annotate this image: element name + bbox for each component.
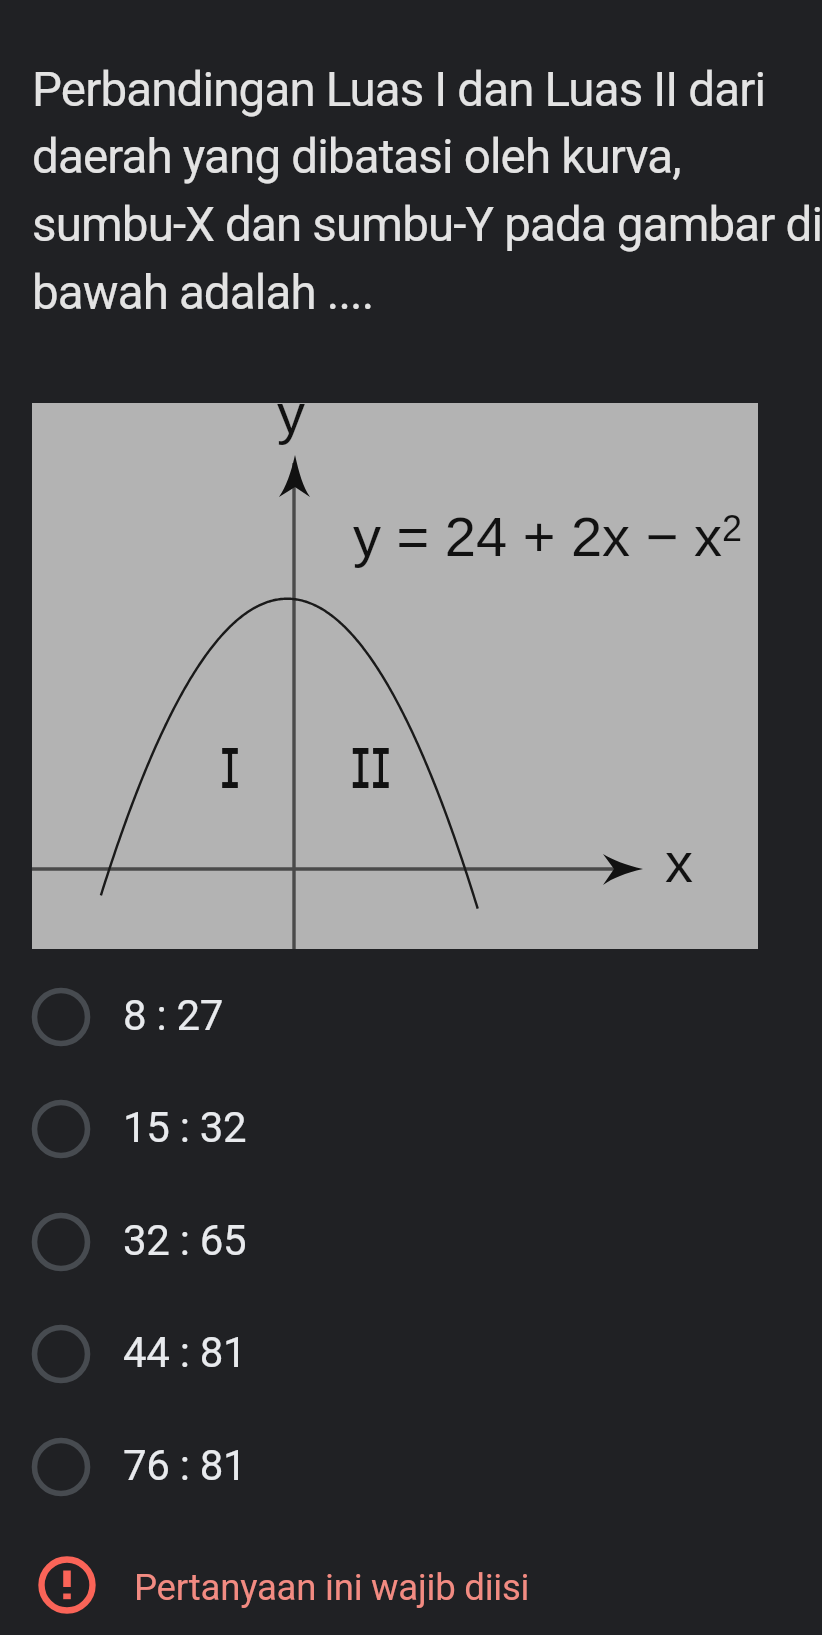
staticText: y: [277, 403, 305, 445]
other: Peringatan: [38, 1559, 96, 1617]
staticText: 8 : 27: [123, 991, 224, 1040]
staticText: Pertanyaan ini wajib diisi: [134, 1566, 530, 1609]
staticText: 44 : 81: [123, 1328, 247, 1377]
button[interactable]: Pilihan jawaban 15 : 32: [0, 1073, 822, 1185]
button[interactable]: Gambar grafik parabola: [32, 403, 758, 949]
button[interactable]: Pilihan jawaban 76 : 81: [0, 1411, 822, 1523]
staticText: 15 : 32: [123, 1103, 247, 1152]
staticText: y = 24 + 2x − x2: [353, 505, 742, 568]
staticText: Perbandingan Luas I dan Luas II dari dae…: [32, 62, 822, 321]
staticText: x: [665, 831, 693, 894]
staticText: 32 : 65: [123, 1216, 247, 1265]
staticText: 76 : 81: [123, 1441, 247, 1490]
button[interactable]: Pilihan jawaban 32 : 65: [0, 1186, 822, 1298]
button[interactable]: Pilihan jawaban 44 : 81: [0, 1298, 822, 1410]
button[interactable]: Pilihan jawaban 8 : 27: [0, 961, 822, 1073]
